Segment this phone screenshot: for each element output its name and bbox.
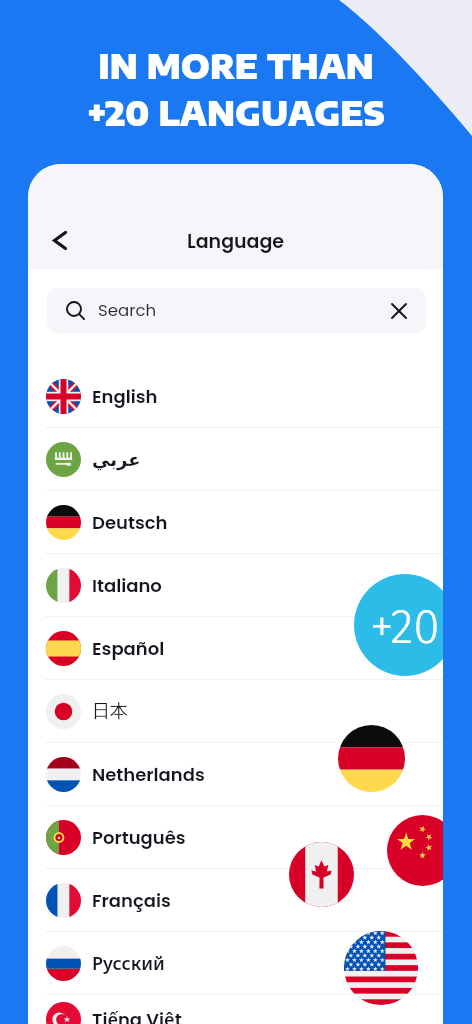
- button[interactable]: Back: [41, 221, 79, 259]
- staticText: Italiano: [92, 573, 162, 598]
- button[interactable]: Deutsch: [28, 491, 443, 554]
- button[interactable]: Português: [28, 806, 443, 869]
- staticText: IN MORE THAN: [0, 45, 472, 86]
- staticText: Русский: [92, 951, 165, 976]
- button[interactable]: Clear search: [388, 300, 410, 322]
- staticText: Tiếng Việt: [92, 1007, 182, 1024]
- staticText: Netherlands: [92, 762, 205, 787]
- staticText: 日本: [92, 700, 128, 723]
- button[interactable]: Español: [28, 617, 443, 680]
- button[interactable]: Français: [28, 869, 443, 932]
- staticText: Deutsch: [92, 510, 168, 535]
- staticText: Español: [92, 636, 165, 661]
- button[interactable]: Netherlands: [28, 743, 443, 806]
- button[interactable]: Search: [47, 288, 426, 333]
- button[interactable]: عربي: [28, 428, 443, 491]
- staticText: Français: [92, 888, 171, 913]
- staticText: +20: [370, 598, 440, 656]
- staticText: Search: [98, 299, 157, 322]
- button[interactable]: Русский: [28, 932, 443, 995]
- button[interactable]: 日本: [28, 680, 443, 743]
- staticText: Language: [187, 228, 285, 255]
- staticText: +20 LANGUAGES: [0, 92, 472, 133]
- staticText: Português: [92, 825, 186, 850]
- staticText: English: [92, 384, 158, 409]
- button[interactable]: Italiano: [28, 554, 443, 617]
- button[interactable]: English: [28, 365, 443, 428]
- button[interactable]: Tiếng Việt: [28, 995, 443, 1024]
- staticText: عربي: [92, 449, 141, 470]
